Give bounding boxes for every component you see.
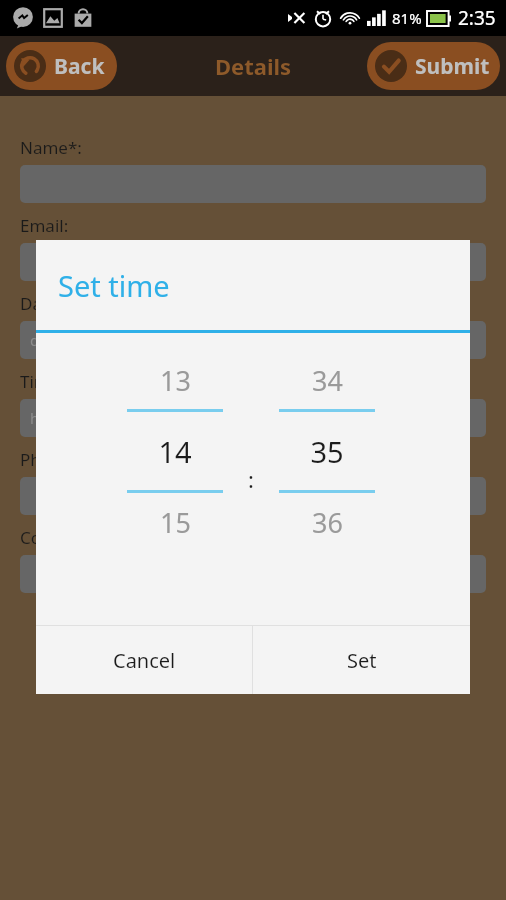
staticText: Cancel [113,647,176,674]
button[interactable]: Back [6,42,117,90]
staticText: Email: [20,214,69,237]
button[interactable]: dd/mm/yyyy [20,321,486,359]
staticText: Date: [20,292,63,315]
button[interactable]: Set [253,626,470,694]
staticText: Set [347,647,377,674]
staticText: 15 [160,504,191,541]
staticText: dd/mm/yyyy [30,330,119,350]
staticText: Details [215,51,292,81]
button[interactable] [20,477,486,515]
staticText: 36 [312,504,343,541]
button[interactable] [20,243,486,281]
staticText: 35 [310,432,344,471]
staticText: Phone: [20,448,76,471]
staticText: Comments: [20,526,112,549]
staticText: Back [54,52,105,81]
button[interactable]: hh:mm [20,399,486,437]
staticText: 81% [392,8,422,28]
staticText: Set time [58,266,170,305]
staticText: 13 [160,362,191,399]
staticText: 2:35 [458,5,496,31]
staticText: 34 [312,362,343,399]
button[interactable]: Cancel [36,626,252,694]
button[interactable] [20,555,486,593]
staticText: Name*: [20,136,82,159]
staticText: Time: [20,370,64,393]
staticText: hh:mm [30,408,81,428]
staticText: : [248,464,254,494]
staticText: Submit [415,52,490,81]
staticText: 14 [158,432,192,471]
button[interactable]: Submit [367,42,500,90]
